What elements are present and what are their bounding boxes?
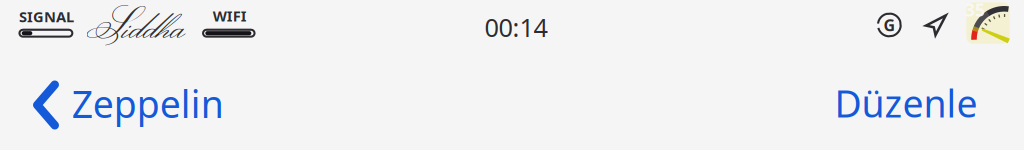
button[interactable]: Zeppelin (27, 76, 223, 132)
button[interactable]: Düzenle (828, 77, 984, 129)
staticText: 35 (965, 0, 985, 21)
staticText: WIFI (213, 6, 247, 26)
staticText: G (883, 14, 895, 36)
staticText: Zeppelin (72, 79, 224, 128)
staticText: Düzenle (834, 78, 977, 128)
staticText: Siddha (86, 0, 185, 57)
staticText: SIGNAL (19, 7, 74, 26)
staticText: 00:14 (484, 10, 547, 44)
